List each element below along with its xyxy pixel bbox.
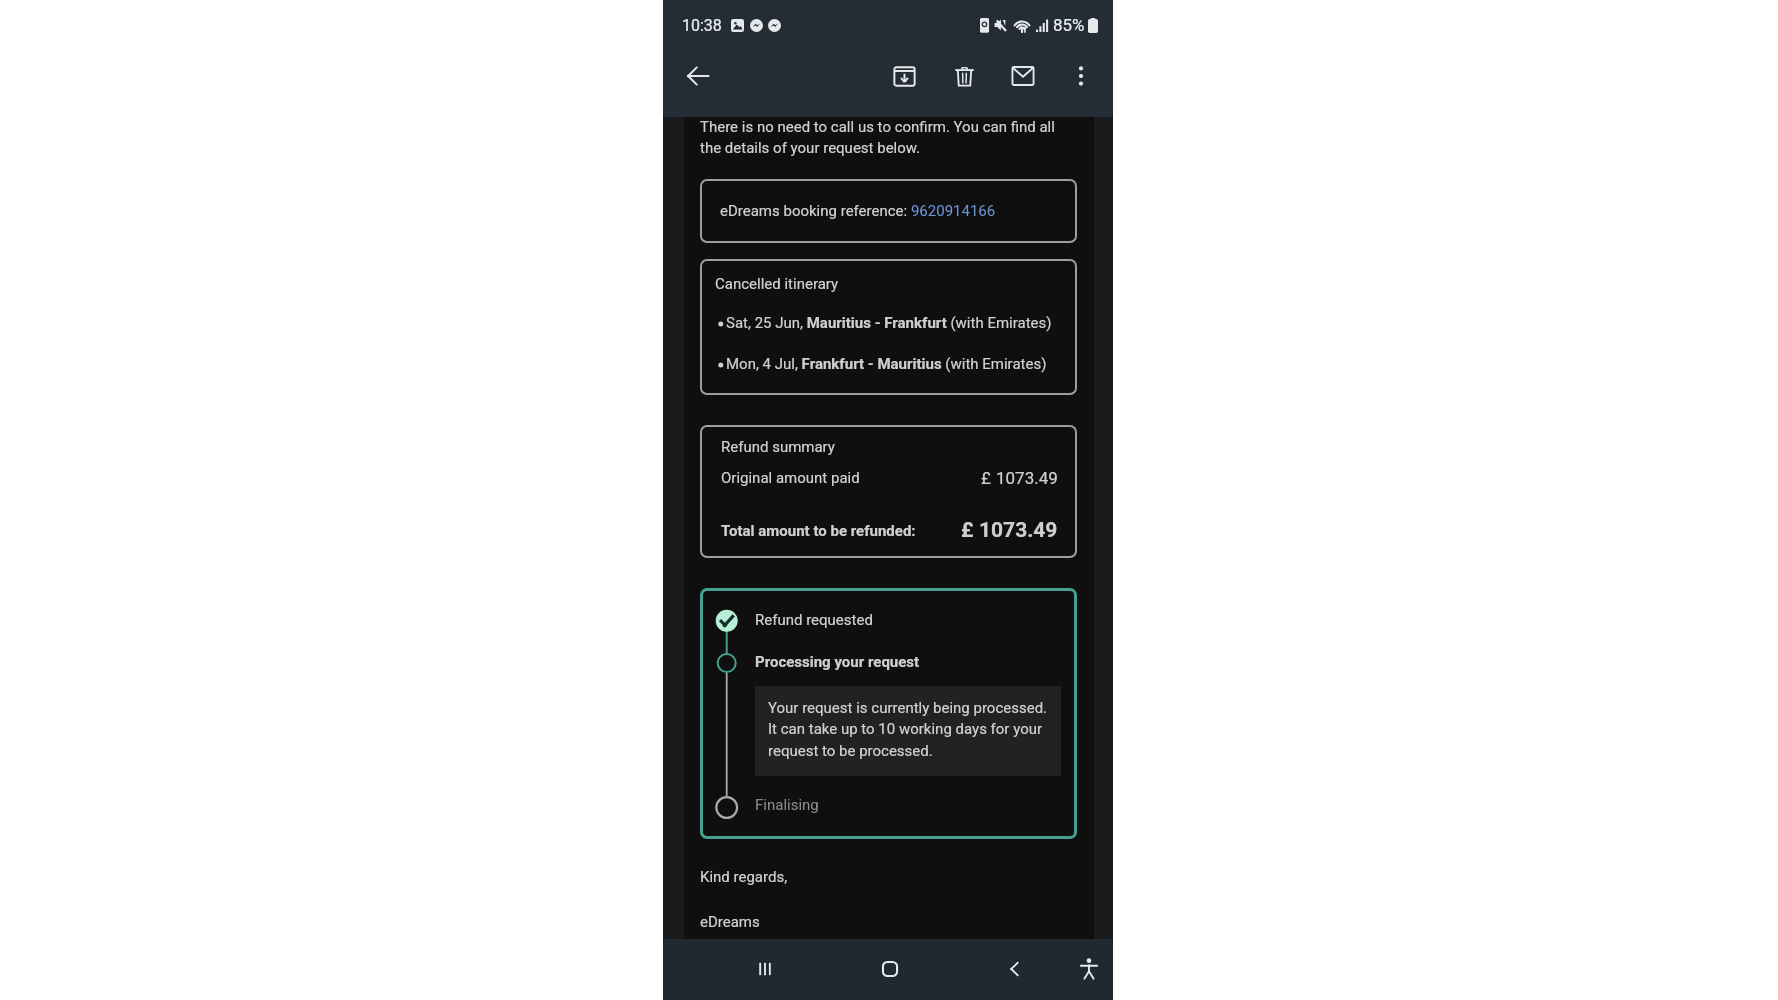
staticText: 10:38 (682, 16, 722, 35)
button[interactable]: Navigate up (676, 54, 720, 98)
button[interactable]: Recent apps (742, 946, 788, 992)
staticText: Kind regards, (700, 868, 788, 886)
staticText: Your request is currently being processe… (768, 699, 1055, 760)
staticText: Processing your request (755, 653, 920, 671)
staticText: £ (961, 518, 974, 543)
staticText: eDreams (700, 913, 760, 931)
staticText: Refund summary (721, 438, 835, 456)
staticText: £ (981, 468, 991, 488)
staticText: 1073.49 (996, 468, 1058, 488)
staticText: Refund requested (755, 611, 873, 629)
staticText: 1073.49 (979, 518, 1058, 543)
staticText: Original amount paid (721, 469, 860, 487)
staticText: There is no need to call us to confirm. … (700, 118, 1077, 157)
button[interactable]: eDreams booking reference: 9620914166 (700, 179, 1077, 243)
staticText: Mon, 4 Jul, Frankfurt - Mauritius (with … (726, 355, 1047, 373)
button[interactable]: More options (1063, 58, 1099, 94)
staticText: Total amount to be refunded: (721, 522, 916, 540)
button[interactable]: Archive (882, 54, 926, 98)
staticText: Sat, 25 Jun, Mauritius - Frankfurt (with… (726, 314, 1052, 332)
staticText: Cancelled itinerary (715, 275, 839, 293)
button[interactable]: Back (992, 946, 1038, 992)
button[interactable]: Delete (942, 54, 986, 98)
button[interactable]: Mark as unread (1002, 54, 1046, 98)
staticText: Finalising (755, 796, 819, 814)
staticText: 85% (1053, 15, 1085, 35)
staticText: eDreams booking reference: 9620914166 (720, 202, 996, 220)
button[interactable]: Home (867, 946, 913, 992)
button[interactable]: Accessibility (1066, 946, 1112, 992)
